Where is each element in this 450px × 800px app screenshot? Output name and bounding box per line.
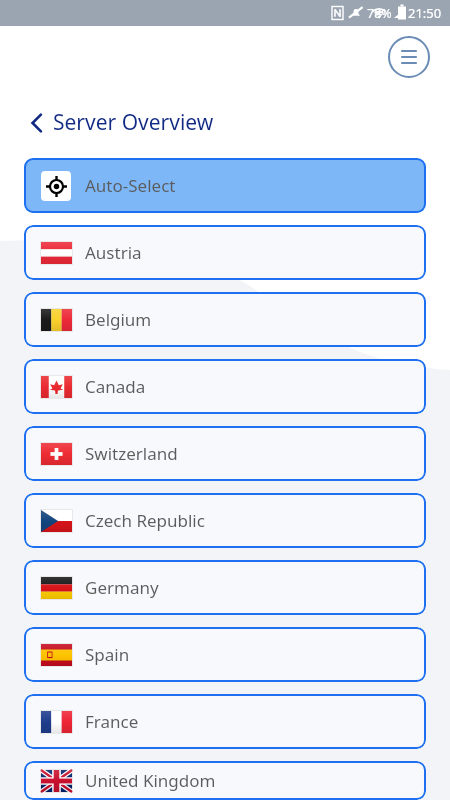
button[interactable]: Germany — [24, 560, 426, 615]
button[interactable]: Belgium — [24, 292, 426, 347]
staticText: 21:50 — [408, 4, 442, 22]
staticText: 78% — [367, 5, 392, 22]
button[interactable]: Canada — [24, 359, 426, 414]
button[interactable]: France — [24, 694, 426, 749]
button[interactable]: Menu — [386, 34, 432, 80]
button[interactable]: Switzerland — [24, 426, 426, 481]
staticText: Spain — [85, 643, 130, 666]
staticText: Canada — [85, 375, 146, 398]
staticText: Germany — [85, 576, 159, 599]
staticText: Server Overview — [53, 108, 214, 137]
staticText: Czech Republic — [85, 509, 205, 532]
staticText: Austria — [85, 241, 142, 264]
button[interactable]: Server Overview — [30, 106, 222, 139]
button[interactable]: Austria — [24, 225, 426, 280]
staticText: Auto-Select — [85, 174, 176, 197]
button[interactable]: United Kingdom — [24, 761, 426, 800]
staticText: Switzerland — [85, 442, 178, 465]
staticText: Belgium — [85, 308, 152, 331]
button[interactable]: Spain — [24, 627, 426, 682]
staticText: United Kingdom — [85, 769, 216, 792]
button[interactable]: Czech Republic — [24, 493, 426, 548]
staticText: France — [85, 710, 139, 733]
button[interactable]: Auto-Select — [24, 158, 426, 213]
